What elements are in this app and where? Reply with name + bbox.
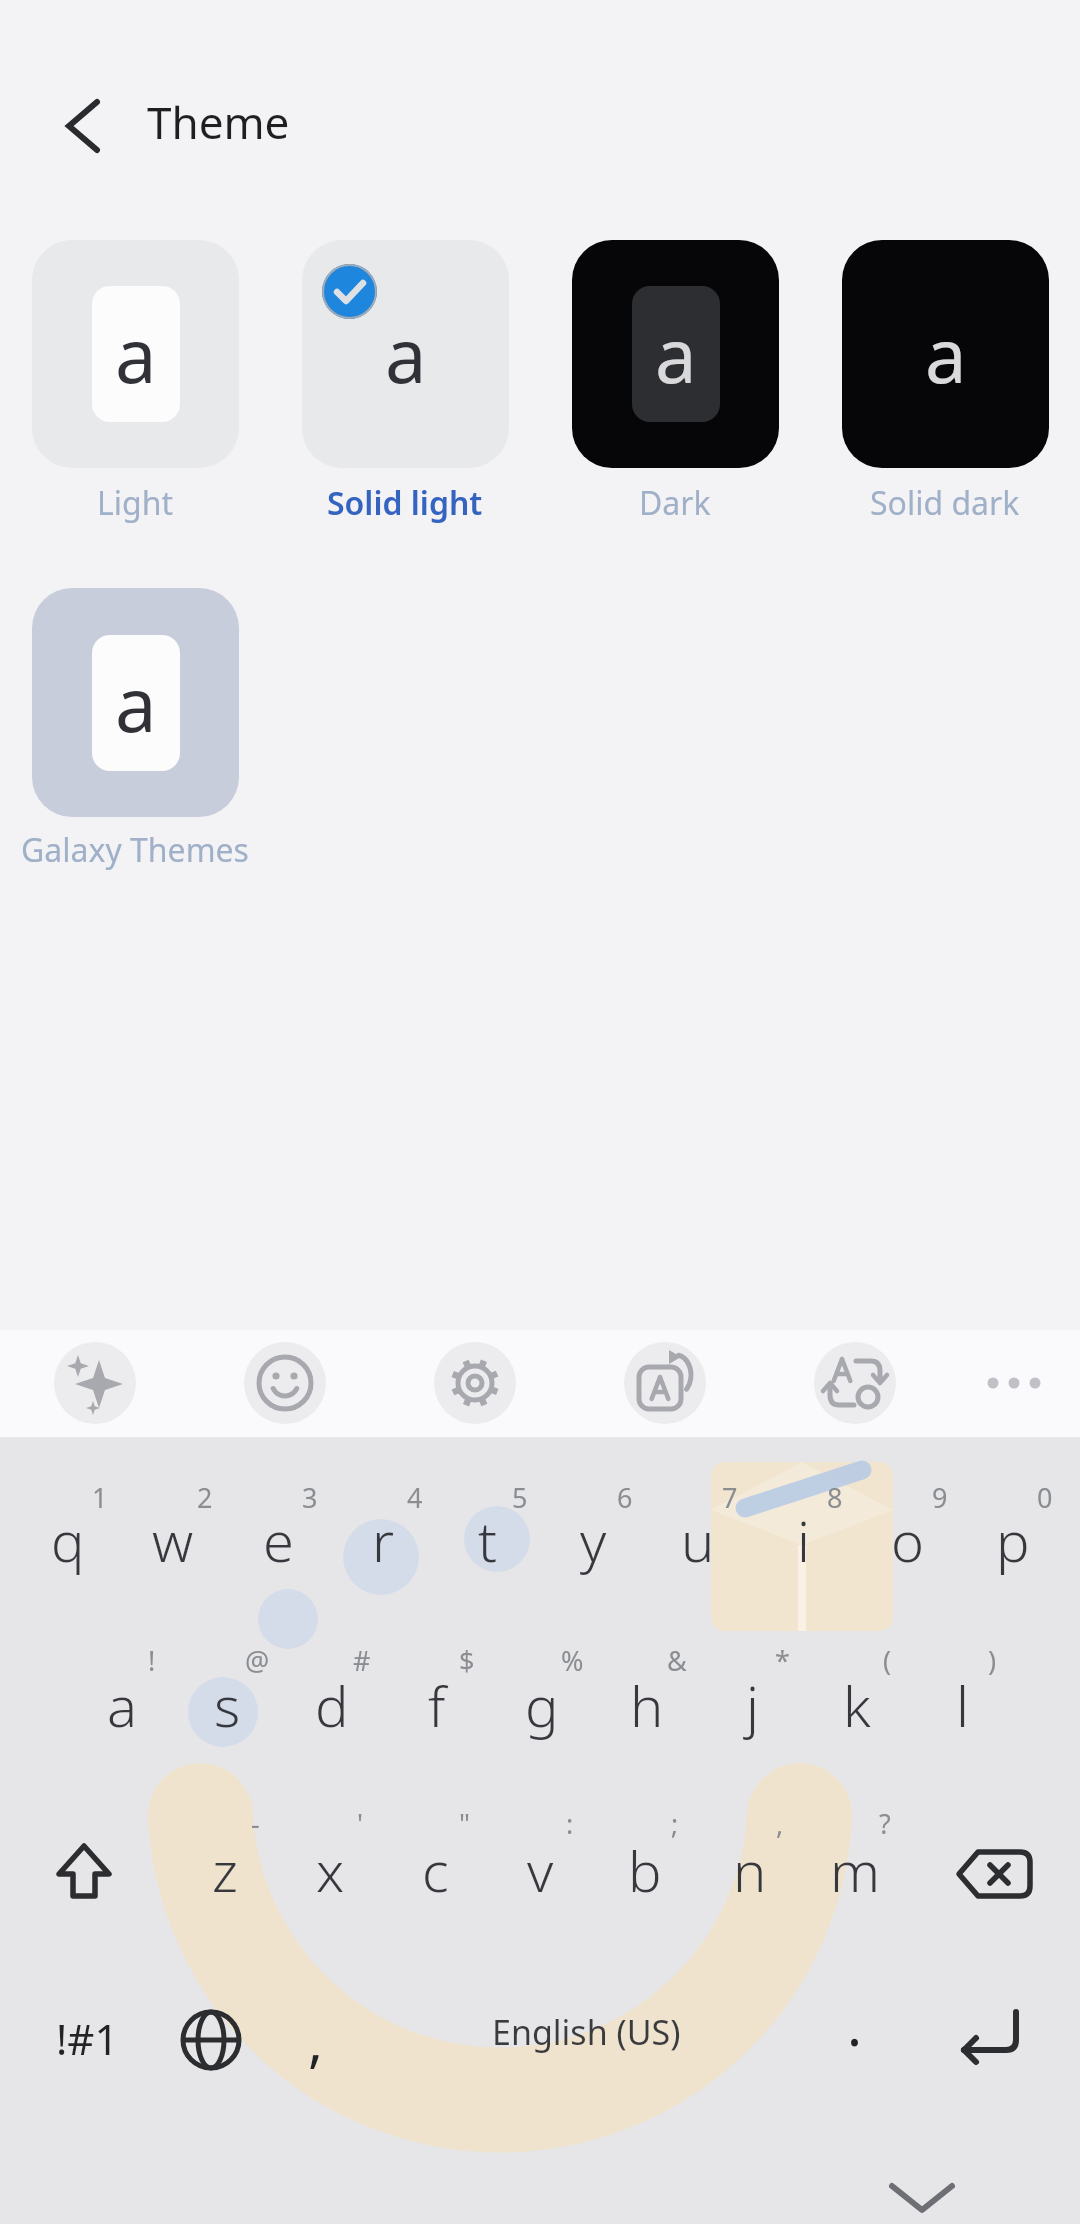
staticText: a	[115, 653, 157, 754]
staticText: '	[357, 1805, 364, 1842]
button[interactable]	[814, 1342, 896, 1424]
button[interactable]: d	[282, 1645, 382, 1765]
button[interactable]	[434, 1342, 516, 1424]
staticText: t	[478, 1502, 498, 1578]
staticText: Theme	[147, 92, 290, 152]
staticText: a	[655, 304, 697, 405]
staticText: a	[107, 1667, 138, 1743]
button[interactable]: a	[72, 1645, 172, 1765]
button[interactable]: Solid dark	[815, 448, 1075, 558]
staticText: f	[428, 1667, 446, 1743]
button[interactable]	[50, 95, 114, 159]
staticText: !#1	[56, 2010, 119, 2067]
button[interactable]	[171, 2000, 251, 2080]
staticText: a	[925, 304, 967, 405]
staticText: 3	[302, 1479, 318, 1516]
staticText: English (US)	[492, 2009, 681, 2055]
button[interactable]	[40, 1832, 128, 1912]
button[interactable]: Galaxy Themes	[5, 795, 265, 905]
staticText: u	[681, 1502, 715, 1578]
button[interactable]: a	[32, 240, 239, 468]
staticText: b	[628, 1832, 662, 1908]
staticText: z	[212, 1832, 238, 1908]
button[interactable]: k	[807, 1645, 907, 1765]
button[interactable]: y	[543, 1480, 643, 1600]
button[interactable]: z	[175, 1810, 275, 1930]
button[interactable]: Dark	[545, 448, 805, 558]
button[interactable]: w	[123, 1480, 223, 1600]
staticText: e	[263, 1502, 294, 1578]
staticText: -	[251, 1805, 260, 1842]
button[interactable]: o	[858, 1480, 958, 1600]
button[interactable]: f	[387, 1645, 487, 1765]
staticText: 0	[1037, 1479, 1053, 1516]
button[interactable]: m	[805, 1810, 905, 1930]
staticText: )	[988, 1642, 997, 1679]
staticText: q	[51, 1502, 85, 1578]
button[interactable]	[624, 1342, 706, 1424]
staticText: (	[883, 1642, 892, 1679]
staticText: s	[214, 1667, 241, 1743]
staticText: !	[148, 1642, 156, 1679]
button[interactable]: !#1	[17, 1983, 157, 2093]
button[interactable]: g	[492, 1645, 592, 1765]
staticText: @	[245, 1642, 270, 1679]
staticText: Light	[97, 481, 174, 525]
staticText: Dark	[639, 481, 711, 525]
staticText: 5	[512, 1479, 528, 1516]
staticText: "	[459, 1805, 471, 1842]
staticText: w	[152, 1502, 194, 1578]
staticText: d	[315, 1667, 349, 1743]
staticText: p	[996, 1502, 1030, 1578]
staticText: 7	[722, 1479, 738, 1516]
button[interactable]: a	[572, 240, 779, 468]
staticText: g	[525, 1667, 559, 1743]
button[interactable]: a	[32, 588, 239, 817]
staticText: %	[561, 1642, 584, 1679]
button[interactable]	[54, 1342, 136, 1424]
staticText: ?	[879, 1805, 891, 1842]
staticText: #	[353, 1642, 371, 1679]
staticText: a	[385, 304, 427, 405]
button[interactable]	[882, 2170, 962, 2224]
button[interactable]: l	[912, 1645, 1012, 1765]
button[interactable]: Light	[5, 448, 265, 558]
button[interactable]: b	[595, 1810, 695, 1930]
button[interactable]	[244, 1342, 326, 1424]
button[interactable]: a	[842, 240, 1049, 468]
button[interactable]: Solid light	[275, 448, 535, 558]
button[interactable]: .	[810, 1969, 900, 2079]
staticText: $	[459, 1642, 475, 1679]
button[interactable]: v	[490, 1810, 590, 1930]
button[interactable]: ,	[271, 1985, 361, 2095]
button[interactable]: j	[702, 1645, 802, 1765]
button[interactable]: English (US)	[376, 1977, 796, 2087]
button[interactable]: h	[597, 1645, 697, 1765]
staticText: h	[630, 1667, 664, 1743]
button[interactable]: a	[302, 240, 509, 468]
button[interactable]: c	[385, 1810, 485, 1930]
button[interactable]	[946, 2000, 1026, 2080]
staticText: m	[830, 1832, 881, 1908]
button[interactable]: n	[700, 1810, 800, 1930]
button[interactable]: u	[648, 1480, 748, 1600]
staticText: c	[422, 1832, 449, 1908]
button[interactable]: e	[228, 1480, 328, 1600]
button[interactable]: q	[18, 1480, 118, 1600]
button[interactable]: x	[280, 1810, 380, 1930]
staticText: i	[797, 1502, 810, 1578]
button[interactable]: t	[438, 1480, 538, 1600]
staticText: 6	[617, 1479, 633, 1516]
staticText: 4	[407, 1479, 423, 1516]
button[interactable]	[950, 1834, 1040, 1914]
button[interactable]: r	[333, 1480, 433, 1600]
staticText: v	[527, 1832, 554, 1908]
button[interactable]: i	[753, 1480, 853, 1600]
staticText: j	[746, 1667, 759, 1743]
button[interactable]	[973, 1342, 1055, 1424]
staticText: Solid light	[327, 481, 483, 525]
staticText: Solid dark	[870, 481, 1020, 525]
button[interactable]: p	[963, 1480, 1063, 1600]
button[interactable]: s	[177, 1645, 277, 1765]
staticText: 2	[197, 1479, 213, 1516]
